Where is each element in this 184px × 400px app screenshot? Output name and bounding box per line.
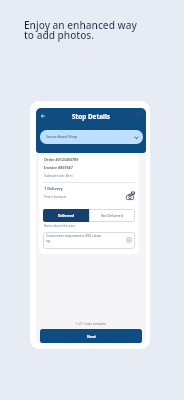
staticText: 1 Delivery xyxy=(44,186,63,191)
button[interactable]: Delivered xyxy=(43,209,89,222)
staticText: Order #0123456789 xyxy=(44,157,79,162)
button[interactable]: Customers requested a $50 clean- up. xyxy=(43,232,135,249)
staticText: Enjoy an enhanced way to add photos. xyxy=(24,18,137,42)
staticText: Stop Details xyxy=(36,112,146,121)
staticText: Front bumper xyxy=(44,194,67,199)
staticText: Delivered xyxy=(58,213,75,218)
staticText: Customers requested a $50 clean- up. xyxy=(46,233,125,243)
button[interactable]: Add photos xyxy=(125,190,137,201)
button[interactable]: Secondhand Shop xyxy=(40,130,143,144)
button[interactable]: Back xyxy=(37,110,48,121)
staticText: Secondhand Shop xyxy=(46,134,78,139)
staticText: Invoice #867647 xyxy=(44,165,73,170)
button[interactable]: Help xyxy=(133,109,144,120)
staticText: Notes about this part xyxy=(44,224,75,228)
staticText: 0 xyxy=(132,191,134,195)
button[interactable]: Record note xyxy=(125,236,133,244)
button[interactable]: Next xyxy=(40,329,142,343)
staticText: Not Delivered xyxy=(101,213,123,218)
staticText: Next xyxy=(87,334,96,339)
button[interactable]: Not Delivered xyxy=(89,209,135,222)
staticText: 1 of 1 tasks complete xyxy=(36,322,146,326)
staticText: Salesperson: Bret xyxy=(44,173,73,178)
